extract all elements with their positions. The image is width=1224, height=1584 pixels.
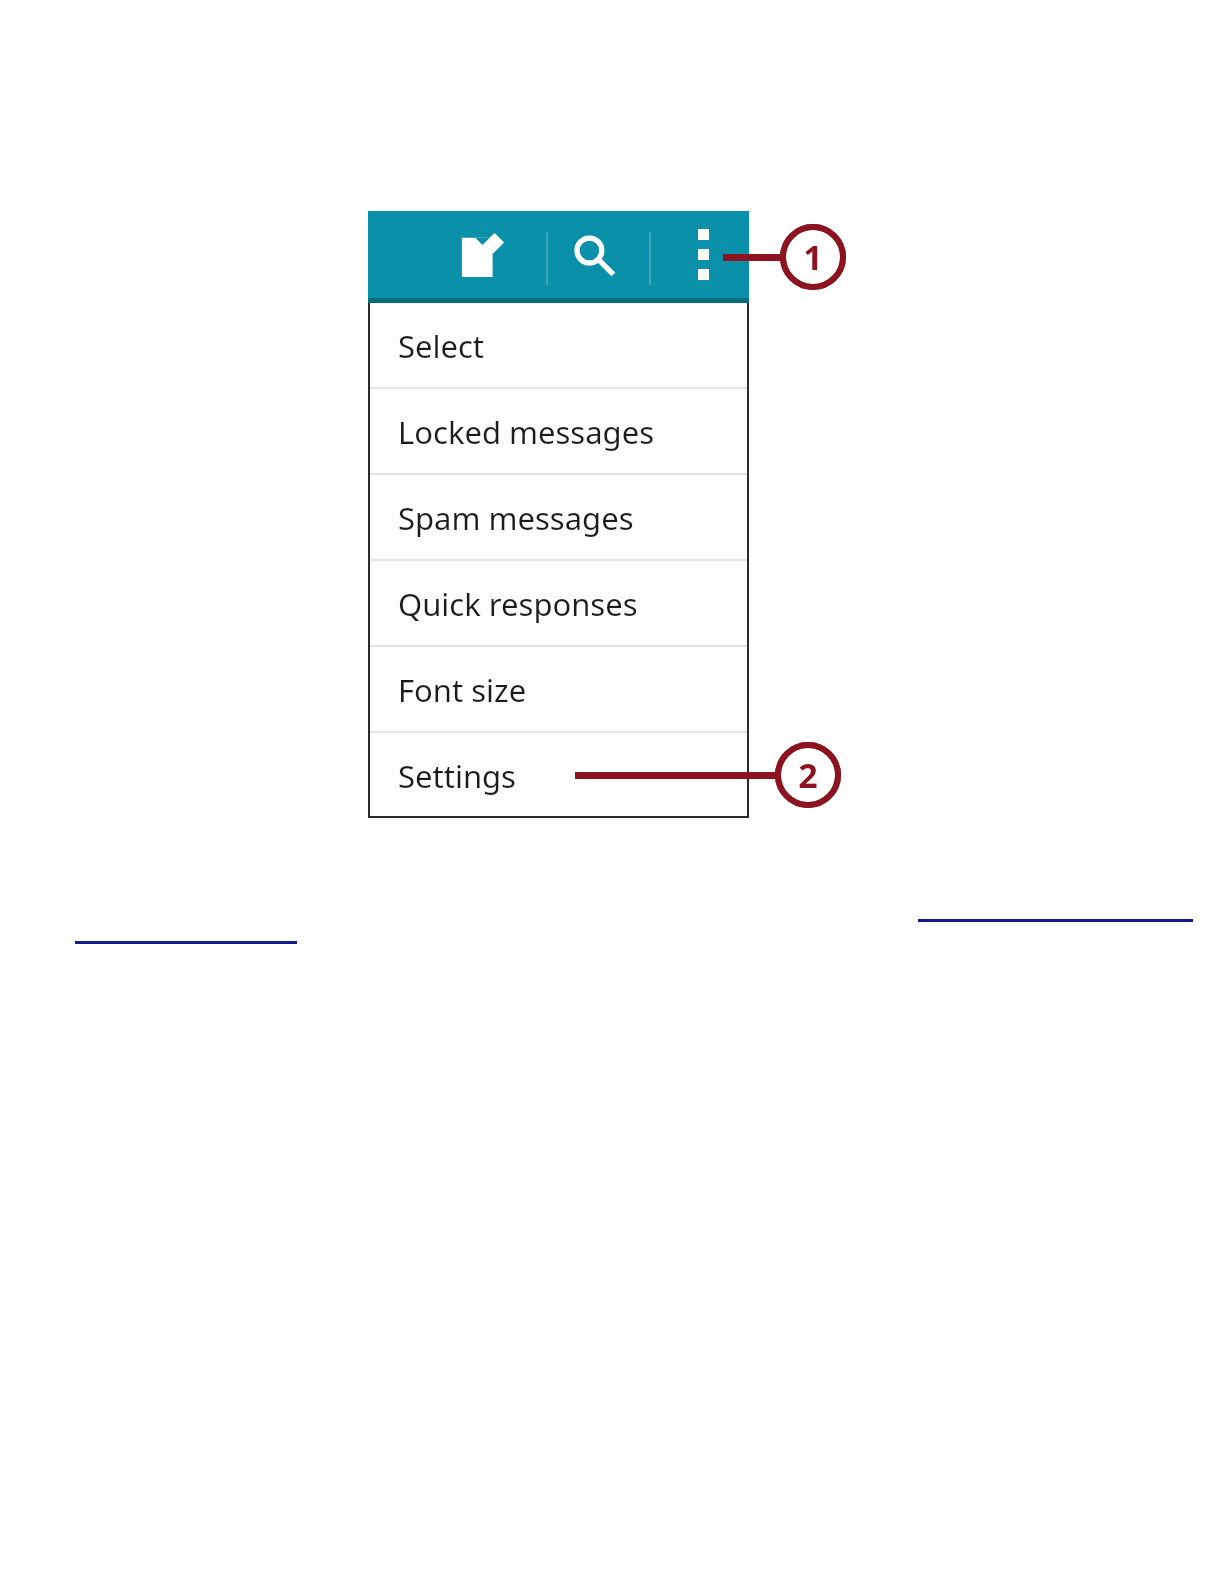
staticText: Select (398, 325, 485, 367)
staticText: 1 (803, 234, 823, 280)
staticText: Settings (398, 755, 516, 797)
staticText: Quick responses (398, 583, 638, 625)
staticText: Locked messages (398, 411, 654, 453)
button[interactable]: Select (368, 303, 749, 389)
staticText: Font size (398, 669, 527, 711)
button[interactable]: Settings (368, 733, 749, 818)
button[interactable]: 1 (780, 224, 846, 290)
staticText: Spam messages (398, 497, 634, 539)
button[interactable]: More options (675, 226, 731, 282)
button[interactable]: Spam messages (368, 475, 749, 561)
button[interactable]: Font size (368, 647, 749, 733)
button[interactable]: Compose new message (453, 226, 513, 286)
staticText: 2 (798, 752, 818, 798)
button[interactable]: 2 (775, 742, 841, 808)
button[interactable]: Locked messages (368, 389, 749, 475)
button[interactable]: Search (564, 226, 624, 286)
button[interactable]: Quick responses (368, 561, 749, 647)
